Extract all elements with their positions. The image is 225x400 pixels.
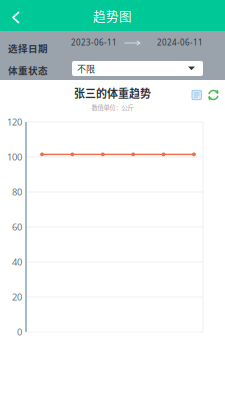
button[interactable]: 不限 (72, 61, 203, 76)
staticText: 20 (12, 291, 22, 303)
button[interactable]: Report (192, 90, 201, 100)
staticText: 2023-06-11 (71, 37, 117, 48)
button[interactable]: Refresh (207, 88, 220, 101)
staticText: 不限 (77, 62, 95, 75)
staticText: 80 (12, 186, 22, 198)
staticText: 选择日期 (8, 41, 48, 55)
staticText: 2024-06-11 (157, 37, 203, 48)
staticText: 0 (17, 326, 22, 338)
staticText: 数值单位：公斤 (91, 103, 133, 112)
staticText: 100 (7, 151, 22, 163)
staticText: 体重状态 (8, 63, 48, 77)
button[interactable]: 2024-06-11 (157, 37, 203, 48)
staticText: 张三的体重趋势 (74, 85, 151, 101)
button[interactable]: Back (0, 0, 32, 31)
staticText: 趋势图 (93, 6, 132, 24)
staticText: 40 (12, 256, 22, 268)
button[interactable]: 2023-06-11 (71, 37, 117, 48)
staticText: 120 (7, 116, 22, 128)
staticText: 60 (12, 221, 22, 233)
